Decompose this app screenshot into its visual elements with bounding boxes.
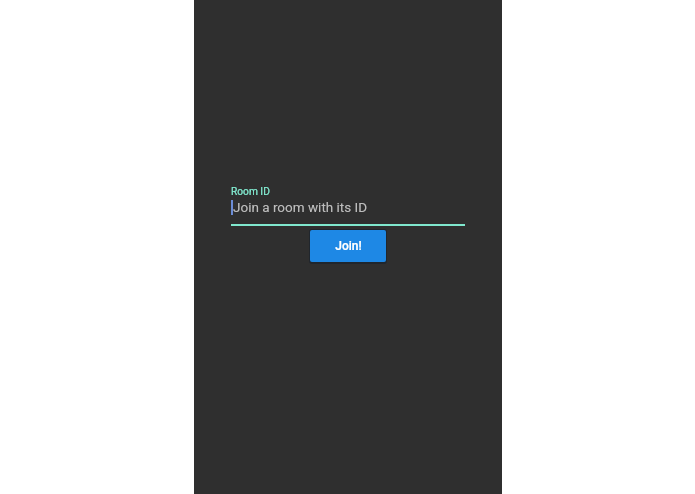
staticText: Join a room with its ID [233, 199, 368, 215]
button[interactable]: Join! [309, 229, 387, 264]
staticText: Room ID [231, 186, 270, 198]
staticText: Join! [335, 239, 362, 253]
button[interactable]: Room ID text field [231, 185, 465, 226]
